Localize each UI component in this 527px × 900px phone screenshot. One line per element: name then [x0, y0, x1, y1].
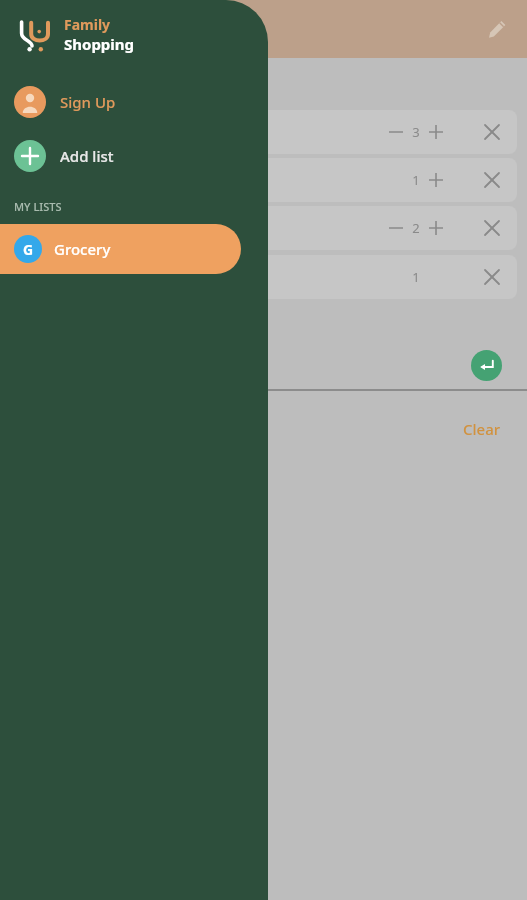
button[interactable]: Clear [457, 415, 507, 443]
staticText: 2 [409, 219, 423, 237]
staticText: Add list [60, 146, 114, 166]
staticText: Sign Up [60, 92, 116, 112]
button[interactable]: Remove [477, 262, 507, 292]
button[interactable]: G [0, 224, 241, 274]
staticText: G [23, 240, 34, 259]
staticText: 1 [409, 268, 423, 286]
button[interactable]: Increase [423, 119, 449, 145]
button[interactable]: Add list [0, 135, 268, 177]
staticText: 3 [409, 123, 423, 141]
staticText: Family [64, 15, 111, 34]
button[interactable]: Submit [471, 350, 502, 381]
button[interactable]: Edit [475, 7, 519, 51]
button[interactable]: Remove [477, 165, 507, 195]
button[interactable]: Decrease [14, 206, 517, 250]
staticText: Shopping [64, 34, 135, 54]
button[interactable]: Increase [423, 167, 449, 193]
button[interactable]: Decrease [14, 255, 517, 299]
button[interactable]: Decrease [383, 215, 409, 241]
staticText: MY LISTS [14, 199, 62, 214]
button[interactable]: Remove [477, 117, 507, 147]
button[interactable]: Sign Up [0, 81, 268, 123]
button[interactable]: Increase [423, 215, 449, 241]
button[interactable]: Decrease [383, 119, 409, 145]
button[interactable]: Family [14, 12, 135, 56]
staticText: 1 [409, 171, 423, 189]
button[interactable]: Decrease [14, 158, 517, 202]
button[interactable]: Remove [477, 213, 507, 243]
staticText: Clear [463, 419, 501, 439]
staticText: Grocery [54, 239, 111, 259]
button[interactable]: Decrease [14, 110, 517, 154]
